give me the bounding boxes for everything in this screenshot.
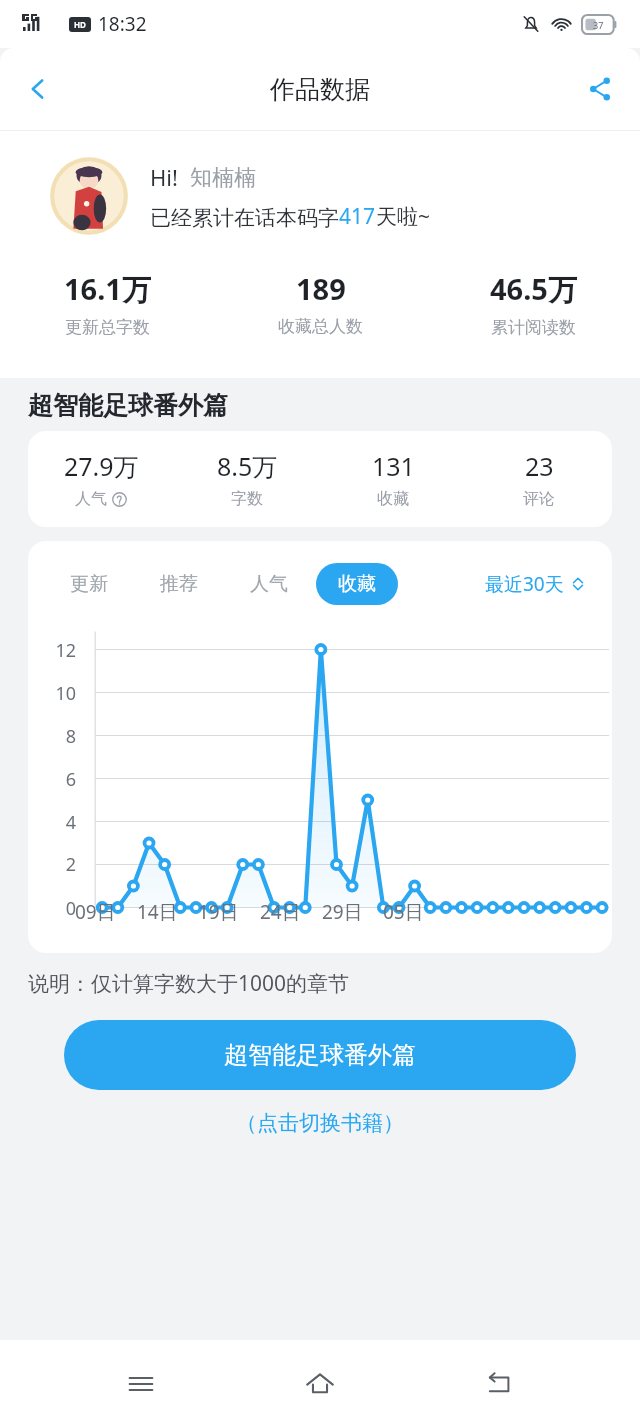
- staticText: 最近30天: [485, 571, 564, 597]
- staticText: 8.5万: [217, 449, 278, 483]
- button[interactable]: Share: [572, 61, 628, 117]
- staticText: 8: [28, 724, 76, 749]
- staticText: 推荐: [160, 572, 198, 596]
- button[interactable]: Home: [281, 1345, 359, 1423]
- button[interactable]: 最近30天: [485, 571, 586, 597]
- staticText: 说明：仅计算字数大于1000的章节: [28, 969, 350, 998]
- staticText: 已经累计在话本码字: [150, 205, 339, 231]
- staticText: 131: [372, 449, 415, 483]
- staticText: 天啦~: [376, 202, 431, 231]
- staticText: 字数: [231, 489, 263, 509]
- staticText: 12: [28, 638, 76, 663]
- staticText: 29日: [322, 899, 363, 925]
- staticText: Hi!: [150, 162, 178, 192]
- staticText: 评论: [523, 489, 555, 509]
- button[interactable]: 27.9万: [28, 431, 612, 527]
- button[interactable]: 189: [214, 269, 427, 337]
- staticText: 0: [28, 896, 76, 921]
- staticText: 189: [296, 269, 346, 308]
- staticText: 超智能足球番外篇: [224, 1040, 416, 1070]
- button[interactable]: 超智能足球番外篇: [64, 1020, 576, 1090]
- staticText: 19日: [198, 899, 239, 925]
- staticText: 09日: [75, 899, 116, 925]
- staticText: 人气: [75, 489, 107, 509]
- staticText: 6: [28, 767, 76, 792]
- staticText: 收藏: [338, 572, 376, 596]
- button[interactable]: Avatar: [50, 157, 128, 235]
- staticText: （点击切换书籍）: [236, 1110, 404, 1136]
- staticText: 417: [339, 202, 376, 231]
- staticText: 更新: [70, 572, 108, 596]
- button[interactable]: （点击切换书籍）: [228, 1102, 412, 1144]
- staticText: 23: [525, 449, 554, 483]
- button[interactable]: Recent apps: [102, 1345, 180, 1423]
- staticText: 10: [28, 681, 76, 706]
- button[interactable]: Back: [461, 1345, 539, 1423]
- staticText: 2: [28, 852, 76, 877]
- staticText: 作品数据: [270, 74, 370, 105]
- staticText: 超智能足球番外篇: [28, 390, 228, 421]
- staticText: 05日: [383, 899, 424, 925]
- staticText: 4: [28, 810, 76, 835]
- button[interactable]: Back: [8, 59, 68, 119]
- button[interactable]: 推荐: [158, 563, 200, 605]
- staticText: 16.1万: [64, 269, 151, 309]
- staticText: 收藏: [377, 489, 409, 509]
- staticText: 27.9万: [64, 449, 139, 483]
- staticText: 24日: [260, 899, 301, 925]
- staticText: 46.5万: [490, 269, 577, 309]
- staticText: 知楠楠: [190, 164, 256, 192]
- staticText: 收藏总人数: [278, 316, 363, 337]
- button[interactable]: 16.1万: [0, 269, 214, 338]
- button[interactable]: 更新: [68, 563, 110, 605]
- button[interactable]: 收藏: [316, 563, 398, 605]
- staticText: 37: [593, 19, 604, 31]
- staticText: 人气: [250, 572, 288, 596]
- button[interactable]: 人气: [248, 563, 290, 605]
- staticText: 累计阅读数: [491, 317, 576, 338]
- button[interactable]: 46.5万: [427, 269, 640, 338]
- staticText: 14日: [137, 899, 178, 925]
- staticText: HD: [74, 19, 86, 30]
- staticText: 18:32: [98, 11, 147, 37]
- staticText: 更新总字数: [65, 317, 150, 338]
